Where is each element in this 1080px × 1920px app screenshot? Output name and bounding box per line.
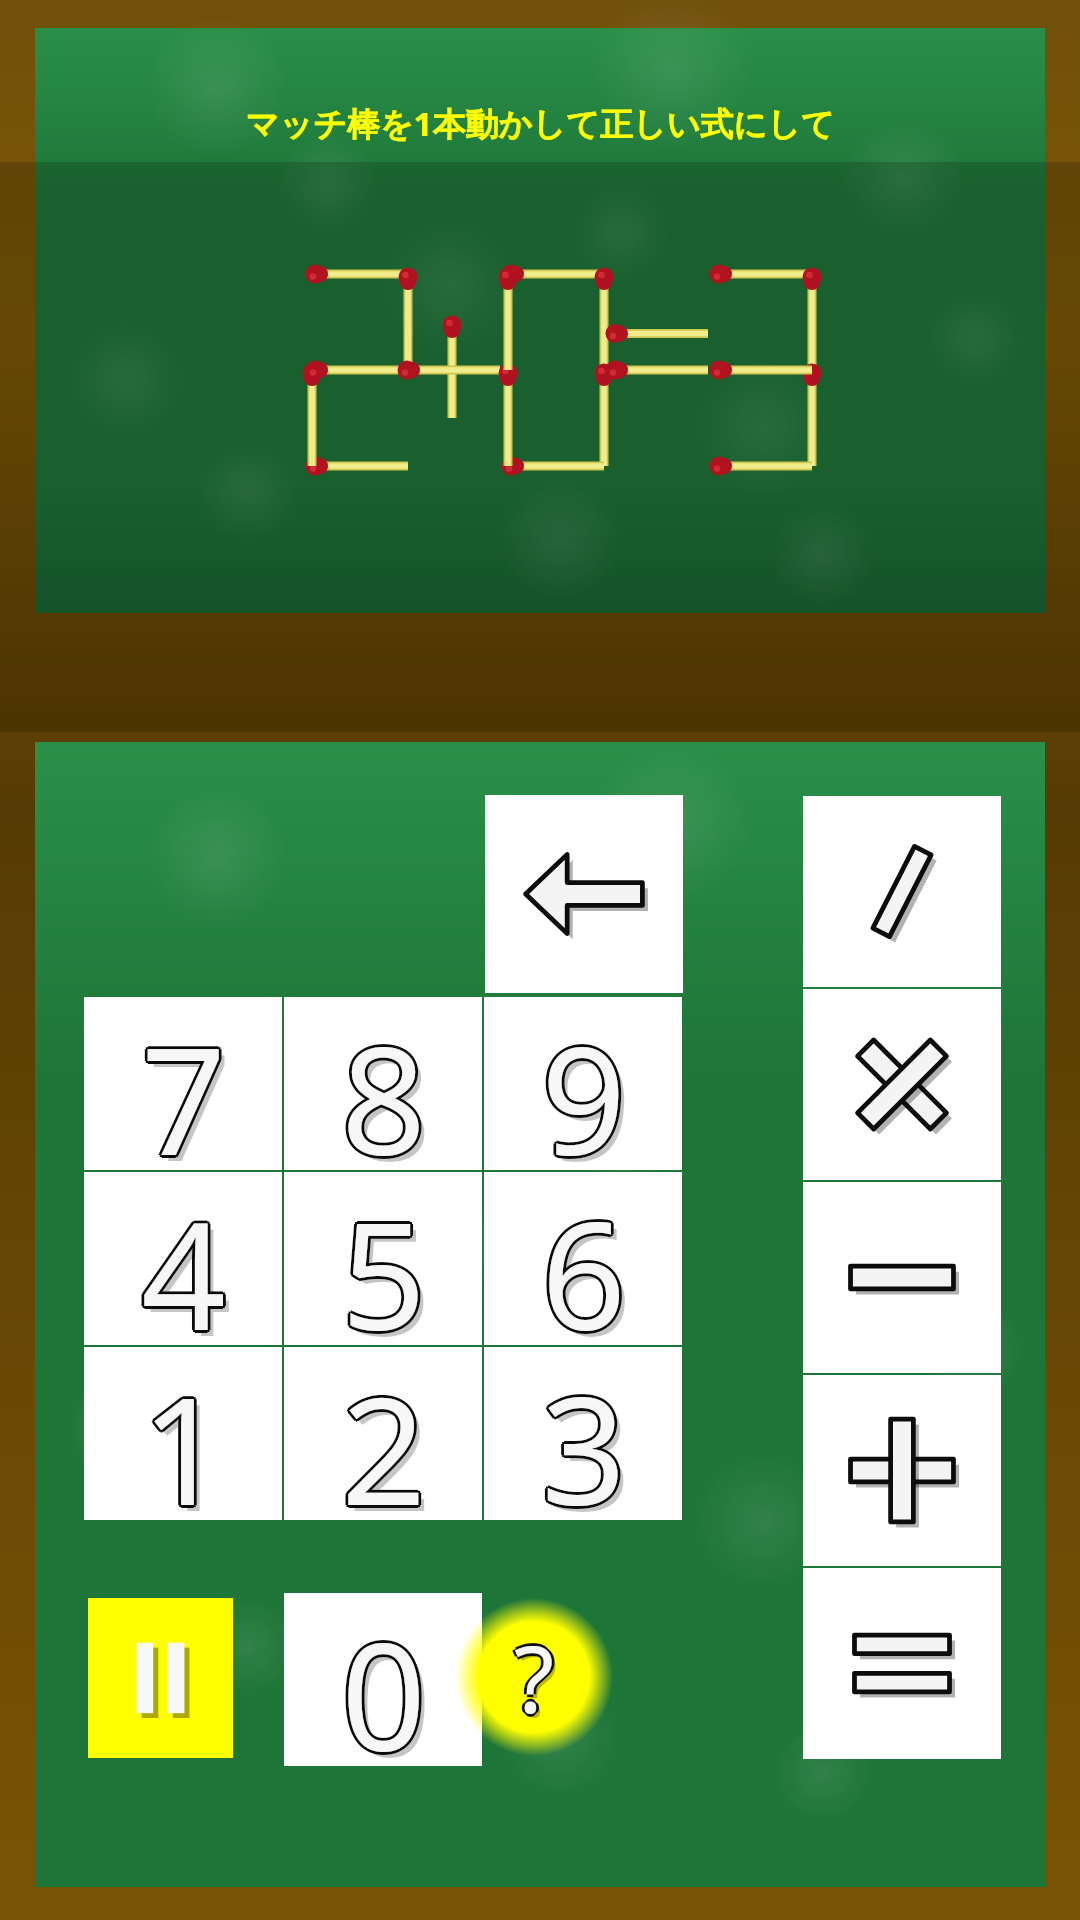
staticText: 5 xyxy=(343,1170,428,1343)
staticText: 0 xyxy=(343,1595,428,1768)
staticText: 1 xyxy=(141,1350,226,1523)
staticText: 3 xyxy=(539,1345,624,1518)
staticText: 5 xyxy=(341,1175,426,1348)
staticText: 7 xyxy=(141,994,226,1167)
staticText: 2 xyxy=(343,1345,428,1518)
staticText: 5 xyxy=(339,1174,424,1347)
staticText: 6 xyxy=(541,1172,626,1345)
staticText: 1 xyxy=(139,1345,224,1518)
staticText: 2 xyxy=(341,1350,426,1523)
staticText: 5 xyxy=(343,1174,428,1347)
staticText: 3 xyxy=(544,1347,629,1520)
button[interactable]: Plus xyxy=(803,1375,1001,1566)
staticText: 3 xyxy=(547,1353,632,1526)
staticText: 8 xyxy=(341,997,426,1170)
staticText: 3 xyxy=(541,1350,626,1523)
staticText: 0 xyxy=(338,1593,423,1766)
button[interactable]: 9 xyxy=(484,997,682,1170)
button[interactable]: Divide xyxy=(803,796,1001,987)
staticText: 7 xyxy=(139,999,224,1172)
staticText: 0 xyxy=(341,1593,426,1766)
staticText: 1 xyxy=(141,1344,226,1517)
staticText: 0 xyxy=(339,1595,424,1768)
staticText: 2 xyxy=(338,1347,423,1520)
staticText: 5 xyxy=(347,1178,432,1351)
button[interactable]: 5 xyxy=(284,1172,482,1345)
staticText: 8 xyxy=(341,994,426,1167)
staticText: 0 xyxy=(347,1599,432,1772)
staticText: 4 xyxy=(141,1172,226,1345)
staticText: 3 xyxy=(541,1344,626,1517)
button[interactable]: Equals xyxy=(803,1568,1001,1759)
staticText: 9 xyxy=(541,994,626,1167)
button[interactable]: 0 xyxy=(284,1593,482,1766)
staticText: 5 xyxy=(339,1170,424,1343)
staticText: ? xyxy=(514,1615,554,1740)
button[interactable]: 6 xyxy=(484,1172,682,1345)
staticText: 6 xyxy=(539,1170,624,1343)
staticText: 5 xyxy=(338,1172,423,1345)
staticText: 4 xyxy=(139,1170,224,1343)
staticText: 9 xyxy=(547,1003,632,1176)
staticText: ? xyxy=(514,1618,554,1743)
staticText: 1 xyxy=(144,1347,229,1520)
staticText: 4 xyxy=(138,1172,223,1345)
staticText: 1 xyxy=(147,1353,232,1526)
staticText: 8 xyxy=(343,999,428,1172)
staticText: 7 xyxy=(141,1000,226,1173)
staticText: 9 xyxy=(541,997,626,1170)
staticText: 9 xyxy=(543,999,628,1172)
staticText: 0 xyxy=(341,1590,426,1763)
staticText: 9 xyxy=(538,997,623,1170)
staticText: 1 xyxy=(143,1345,228,1518)
button[interactable]: Backspace xyxy=(485,795,683,993)
staticText: 3 xyxy=(539,1349,624,1522)
staticText: 4 xyxy=(147,1178,232,1351)
button[interactable]: 3 xyxy=(484,1347,682,1520)
staticText: マッチ棒を1本動かして正しい式にして xyxy=(245,101,835,146)
staticText: 8 xyxy=(338,997,423,1170)
button[interactable]: Pause xyxy=(88,1598,233,1758)
staticText: 4 xyxy=(144,1172,229,1345)
staticText: 9 xyxy=(539,995,624,1168)
staticText: ? xyxy=(511,1615,551,1740)
staticText: 2 xyxy=(344,1347,429,1520)
staticText: 7 xyxy=(144,997,229,1170)
staticText: 5 xyxy=(341,1169,426,1342)
staticText: 6 xyxy=(538,1172,623,1345)
staticText: 4 xyxy=(143,1174,228,1347)
staticText: 0 xyxy=(344,1593,429,1766)
staticText: 7 xyxy=(143,995,228,1168)
staticText: 2 xyxy=(339,1349,424,1522)
staticText: 3 xyxy=(543,1349,628,1522)
button[interactable]: 4 xyxy=(84,1172,282,1345)
button[interactable]: 8 xyxy=(284,997,482,1170)
staticText: 5 xyxy=(341,1172,426,1345)
staticText: 6 xyxy=(543,1170,628,1343)
staticText: 1 xyxy=(139,1349,224,1522)
staticText: 0 xyxy=(339,1591,424,1764)
staticText: 2 xyxy=(343,1349,428,1522)
staticText: 9 xyxy=(543,995,628,1168)
staticText: 6 xyxy=(541,1169,626,1342)
button[interactable]: Multiply xyxy=(803,989,1001,1180)
staticText: 8 xyxy=(344,997,429,1170)
staticText: 8 xyxy=(339,999,424,1172)
staticText: ? xyxy=(514,1612,554,1737)
staticText: 4 xyxy=(139,1174,224,1347)
staticText: 3 xyxy=(538,1347,623,1520)
staticText: 4 xyxy=(141,1169,226,1342)
staticText: 2 xyxy=(347,1353,432,1526)
staticText: 4 xyxy=(141,1175,226,1348)
button[interactable]: 1 xyxy=(84,1347,282,1520)
button[interactable]: Minus xyxy=(803,1182,1001,1373)
button[interactable]: 2 xyxy=(284,1347,482,1520)
staticText: ? xyxy=(517,1615,557,1740)
button[interactable]: 7 xyxy=(84,997,282,1170)
staticText: 2 xyxy=(341,1344,426,1517)
staticText: 1 xyxy=(143,1349,228,1522)
staticText: 7 xyxy=(141,997,226,1170)
staticText: 8 xyxy=(347,1003,432,1176)
staticText: 9 xyxy=(544,997,629,1170)
button[interactable]: Help xyxy=(455,1598,613,1756)
